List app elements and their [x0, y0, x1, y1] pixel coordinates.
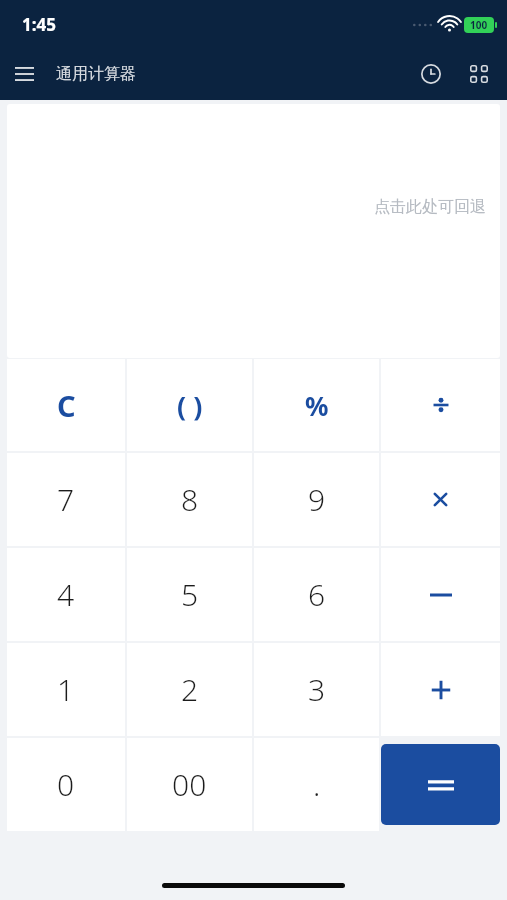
button[interactable]: 0	[7, 738, 125, 831]
button[interactable]: Backspace area	[7, 104, 500, 358]
button[interactable]	[381, 453, 500, 546]
staticText: 8	[181, 479, 199, 520]
button[interactable]	[381, 744, 500, 825]
button[interactable]: 8	[127, 453, 252, 546]
staticText: 1:45	[22, 13, 56, 36]
button[interactable]: %	[254, 359, 379, 451]
button[interactable]: 7	[7, 453, 125, 546]
staticText: 7	[57, 479, 75, 520]
staticText: 9	[308, 479, 326, 520]
button[interactable]: 5	[127, 548, 252, 641]
button[interactable]: 6	[254, 548, 379, 641]
button[interactable]: ( )	[127, 359, 252, 451]
staticText: 通用计算器	[56, 64, 136, 84]
staticText: 00	[172, 764, 207, 805]
button[interactable]: 9	[254, 453, 379, 546]
staticText: 2	[181, 669, 199, 710]
button[interactable]: History	[407, 50, 455, 98]
staticText: 4	[57, 574, 75, 615]
button[interactable]: 3	[254, 643, 379, 736]
staticText: C	[57, 386, 76, 425]
button[interactable]	[381, 643, 500, 736]
button[interactable]: .	[254, 738, 379, 831]
button[interactable]: C	[7, 359, 125, 451]
button[interactable]: 4	[7, 548, 125, 641]
staticText: 3	[308, 669, 326, 710]
staticText: 点击此处可回退	[374, 197, 486, 217]
button[interactable]: Menu	[0, 50, 48, 98]
button[interactable]: 00	[127, 738, 252, 831]
staticText: .	[313, 764, 321, 805]
staticText: ( )	[177, 387, 203, 424]
button[interactable]: Modes	[455, 50, 503, 98]
button[interactable]: 2	[127, 643, 252, 736]
staticText: 1	[57, 669, 75, 710]
staticText: 6	[308, 574, 326, 615]
button[interactable]	[381, 359, 500, 451]
staticText: 100	[470, 18, 488, 32]
staticText: 0	[57, 764, 75, 805]
staticText: %	[305, 388, 329, 423]
button[interactable]	[381, 548, 500, 641]
button[interactable]: 1	[7, 643, 125, 736]
staticText: 5	[181, 574, 199, 615]
